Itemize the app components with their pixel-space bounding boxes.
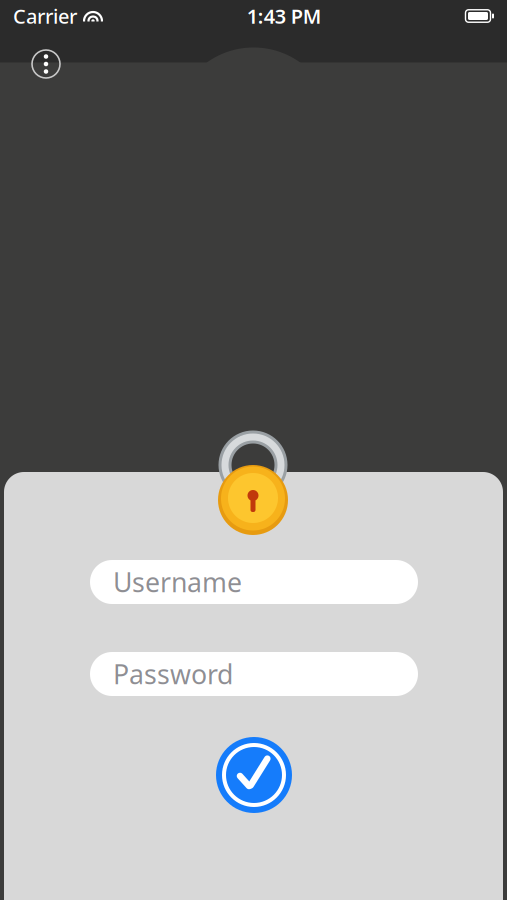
button[interactable]: Username [90,560,418,604]
staticText: Username [113,564,242,600]
staticText: Carrier [13,3,77,29]
staticText: Password [113,656,233,692]
button[interactable]: More options [24,42,68,86]
staticText: 1:43 PM [247,3,322,29]
button[interactable]: Password [90,652,418,696]
button[interactable]: Submit [216,737,292,813]
